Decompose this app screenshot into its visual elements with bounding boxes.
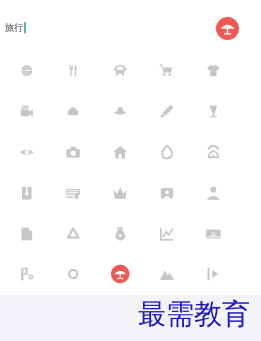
button[interactable]: Icon 22 — [56, 217, 90, 251]
button[interactable]: Icon 9 — [150, 94, 184, 128]
button[interactable]: Icon 25 — [196, 217, 230, 251]
button[interactable]: Icon 14 — [150, 135, 184, 169]
button[interactable]: Icon 7 — [56, 94, 90, 128]
staticText: 旅行 — [5, 22, 23, 33]
button[interactable]: Selected icon — [216, 17, 239, 40]
button[interactable]: Icon 8 — [103, 94, 137, 128]
button[interactable]: Icon 30 — [196, 257, 230, 291]
button[interactable]: Icon 12 — [56, 135, 90, 169]
button[interactable]: Icon 21 — [10, 217, 44, 251]
button[interactable]: Icon 4 — [150, 54, 184, 88]
button[interactable]: Icon 20 — [196, 176, 230, 210]
button[interactable]: Icon 18 — [103, 176, 137, 210]
button[interactable]: Icon 2 — [56, 54, 90, 88]
button[interactable]: Icon 27 — [56, 257, 90, 291]
button[interactable]: Icon 10 — [196, 94, 230, 128]
button[interactable]: Icon 19 — [150, 176, 184, 210]
button[interactable]: Icon 13 — [103, 135, 137, 169]
button[interactable]: Icon 28 — [103, 257, 137, 291]
staticText: 最需教育 — [138, 297, 250, 331]
button[interactable]: Icon 23 — [103, 217, 137, 251]
button[interactable]: Icon 26 — [10, 257, 44, 291]
button[interactable]: Icon 29 — [150, 257, 184, 291]
button[interactable]: Icon 24 — [150, 217, 184, 251]
button[interactable]: Icon 3 — [103, 54, 137, 88]
button[interactable]: Icon 5 — [196, 54, 230, 88]
button[interactable]: Icon 15 — [196, 135, 230, 169]
button[interactable]: Icon 17 — [56, 176, 90, 210]
button[interactable]: Icon 16 — [10, 176, 44, 210]
button[interactable]: Icon 6 — [10, 94, 44, 128]
button[interactable]: Icon 1 — [10, 54, 44, 88]
button[interactable]: Icon 11 — [10, 135, 44, 169]
